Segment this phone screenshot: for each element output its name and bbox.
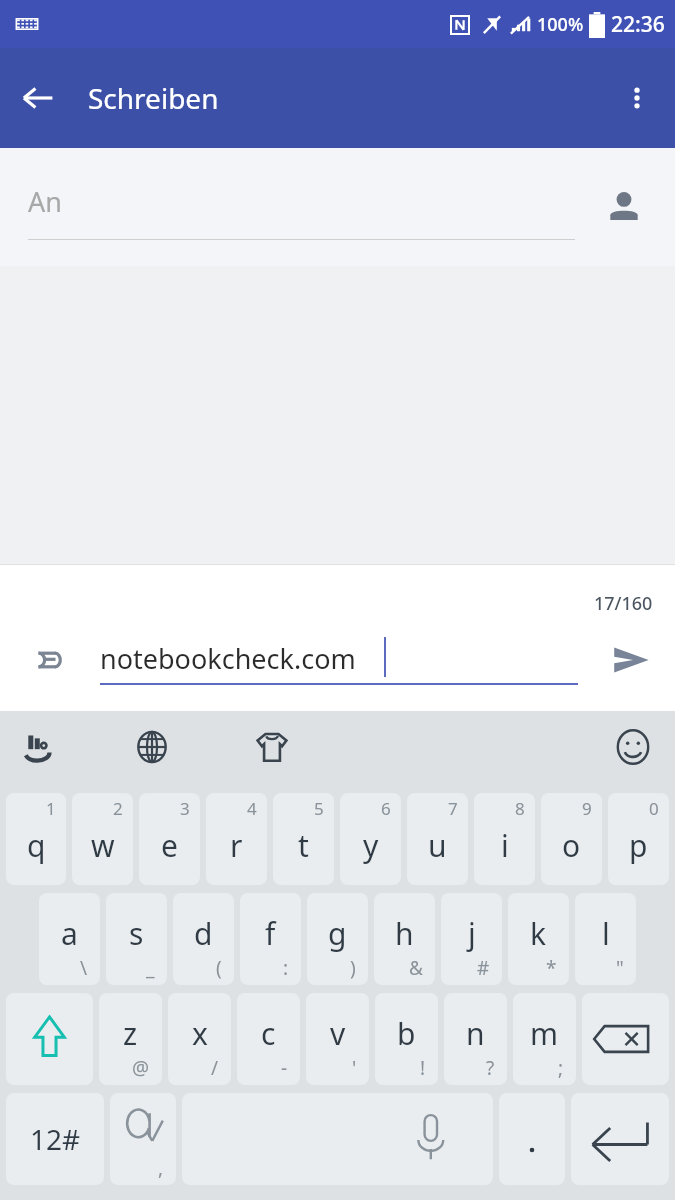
staticText: i [501, 825, 509, 866]
staticText: r [230, 825, 243, 866]
button[interactable]: d [173, 893, 234, 985]
button[interactable]: Change language [122, 717, 182, 777]
staticText: 0 [649, 797, 659, 820]
button[interactable]: c [237, 993, 300, 1085]
staticText: - [281, 1055, 288, 1081]
staticText: v [330, 1013, 346, 1054]
button[interactable]: Shift [6, 993, 93, 1085]
staticText: & [409, 955, 423, 981]
button[interactable]: Theme [242, 717, 302, 777]
button[interactable]: Space [182, 1093, 493, 1185]
button[interactable]: More options [609, 70, 665, 126]
staticText: ! [420, 1055, 426, 1081]
button[interactable]: Choose contact [595, 178, 653, 236]
button[interactable]: l [575, 893, 636, 985]
staticText: ( [216, 955, 222, 981]
staticText: z [123, 1013, 138, 1054]
button[interactable]: f [240, 893, 301, 985]
staticText: c [261, 1013, 276, 1054]
button[interactable]: a [39, 893, 100, 985]
staticText: 1 [46, 797, 56, 820]
button[interactable]: i [474, 793, 535, 885]
staticText: 6 [381, 797, 391, 820]
staticText: y [363, 825, 379, 866]
staticText: notebookcheck.com [100, 640, 356, 677]
button[interactable]: o [541, 793, 602, 885]
staticText: h [395, 913, 414, 954]
staticText: 22:36 [611, 10, 665, 39]
staticText: g [328, 913, 347, 954]
staticText: , [158, 1155, 164, 1181]
staticText: ' [352, 1055, 357, 1081]
button[interactable]: z [99, 993, 162, 1085]
button[interactable]: k [508, 893, 569, 985]
staticText: @ [132, 1055, 150, 1081]
staticText: b [397, 1013, 416, 1054]
staticText: 7 [448, 797, 458, 820]
button[interactable]: h [374, 893, 435, 985]
button[interactable]: s [106, 893, 167, 985]
button[interactable]: Handwriting [8, 717, 68, 777]
staticText: : [283, 955, 289, 981]
button[interactable]: Period [499, 1093, 565, 1185]
staticText: Schreiben [88, 79, 219, 117]
staticText: o [562, 825, 581, 866]
button[interactable]: t [273, 793, 334, 885]
staticText: _ [146, 955, 155, 981]
button[interactable]: r [206, 793, 267, 885]
staticText: ? [486, 1055, 495, 1081]
button[interactable]: g [307, 893, 368, 985]
button[interactable]: 12# [6, 1093, 104, 1185]
staticText: 17/160 [594, 591, 653, 616]
staticText: w [91, 825, 115, 866]
staticText: s [129, 913, 144, 954]
button[interactable]: u [407, 793, 468, 885]
staticText: q [27, 825, 46, 866]
button[interactable]: Emoji [603, 717, 663, 777]
staticText: k [530, 913, 547, 954]
button[interactable]: Back [12, 72, 64, 124]
staticText: l [602, 913, 610, 954]
staticText: ; [558, 1055, 564, 1081]
staticText: # [477, 955, 490, 981]
button[interactable]: Send [601, 630, 661, 690]
staticText: 12# [30, 1120, 81, 1158]
button[interactable]: x [168, 993, 231, 1085]
staticText: An [28, 183, 62, 220]
staticText: j [468, 913, 476, 954]
button[interactable]: b [375, 993, 438, 1085]
staticText: " [616, 955, 624, 981]
staticText: d [194, 913, 213, 954]
button[interactable]: q [6, 793, 66, 885]
staticText: a [61, 913, 78, 954]
button[interactable]: Enter [571, 1093, 669, 1185]
staticText: f [265, 913, 276, 954]
staticText: ) [350, 955, 356, 981]
staticText: e [161, 825, 178, 866]
button[interactable]: m [513, 993, 576, 1085]
button[interactable]: j [441, 893, 502, 985]
button[interactable]: w [72, 793, 133, 885]
staticText: 5 [314, 797, 324, 820]
button[interactable]: n [444, 993, 507, 1085]
button[interactable]: v [306, 993, 369, 1085]
staticText: / [211, 1055, 219, 1081]
button[interactable]: Attach [18, 632, 74, 688]
button[interactable]: Autocorrect [110, 1093, 176, 1185]
staticText: 4 [247, 797, 257, 820]
staticText: 9 [582, 797, 592, 820]
staticText: 8 [515, 797, 525, 820]
button[interactable]: Backspace [582, 993, 669, 1085]
staticText: 3 [180, 797, 190, 820]
button[interactable]: y [340, 793, 401, 885]
staticText: t [298, 825, 309, 866]
button[interactable]: p [608, 793, 669, 885]
staticText: m [530, 1013, 559, 1054]
staticText: n [466, 1013, 485, 1054]
button[interactable]: e [139, 793, 200, 885]
staticText: 2 [113, 797, 123, 820]
staticText: u [428, 825, 447, 866]
staticText: p [629, 825, 648, 866]
staticText: * [546, 955, 557, 981]
staticText: 100% [537, 12, 584, 37]
